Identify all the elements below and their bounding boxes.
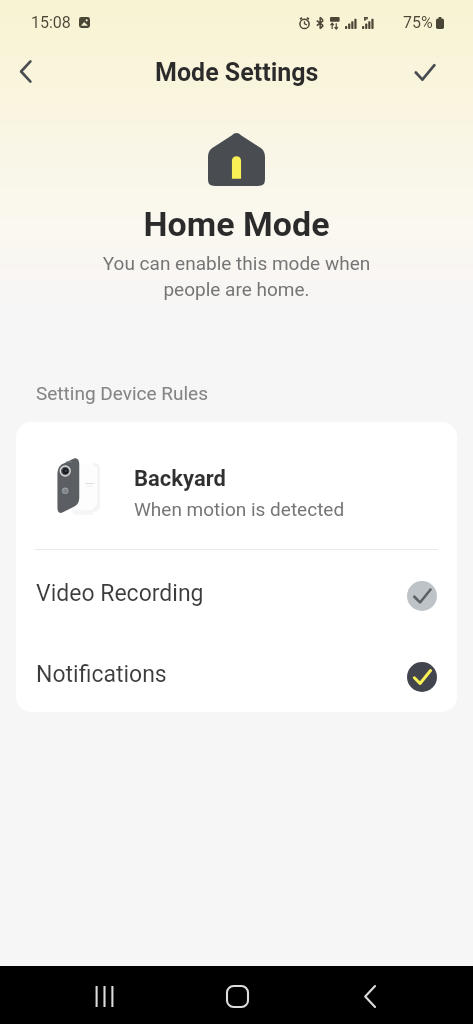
button[interactable]: Backyard [16, 422, 457, 549]
button[interactable]: Video Recording [16, 550, 457, 631]
button[interactable]: Confirm [403, 51, 447, 95]
staticText: Home Mode [0, 204, 473, 244]
button[interactable]: Back [340, 966, 400, 1024]
staticText: 15:08 [31, 13, 71, 32]
button[interactable]: Recent apps [74, 966, 134, 1024]
staticText: Setting Device Rules [36, 382, 208, 404]
staticText: Video Recording [36, 580, 204, 607]
button[interactable]: Notifications [16, 631, 457, 712]
staticText: Mode Settings [155, 58, 319, 87]
staticText: Notifications [36, 661, 167, 688]
staticText: You can enable this mode when people are… [0, 252, 473, 300]
staticText: Backyard [134, 466, 226, 492]
staticText: 75% [403, 13, 433, 32]
button[interactable]: Home [207, 966, 267, 1024]
button[interactable]: Back [3, 51, 47, 95]
staticText: When motion is detected [134, 498, 345, 520]
